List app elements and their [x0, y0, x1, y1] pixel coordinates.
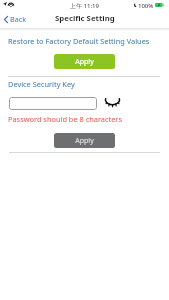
button[interactable] [9, 97, 97, 110]
staticText: Apply [75, 57, 94, 67]
staticText: 上午 11:19 [70, 2, 99, 10]
staticText: Apply [75, 136, 94, 146]
button[interactable]: Apply [54, 54, 115, 69]
staticText: Password should be 8 characters [8, 114, 122, 124]
staticText: Back [10, 14, 26, 24]
button[interactable]: Apply [54, 133, 115, 148]
button[interactable]: Show password [101, 94, 123, 110]
staticText: Specific Setting [55, 13, 115, 24]
staticText: 100% [138, 2, 154, 10]
staticText: Restore to Factory Default Setting Value… [8, 36, 150, 46]
button[interactable]: Back [1, 11, 32, 27]
staticText: Device Security Key [8, 79, 75, 89]
